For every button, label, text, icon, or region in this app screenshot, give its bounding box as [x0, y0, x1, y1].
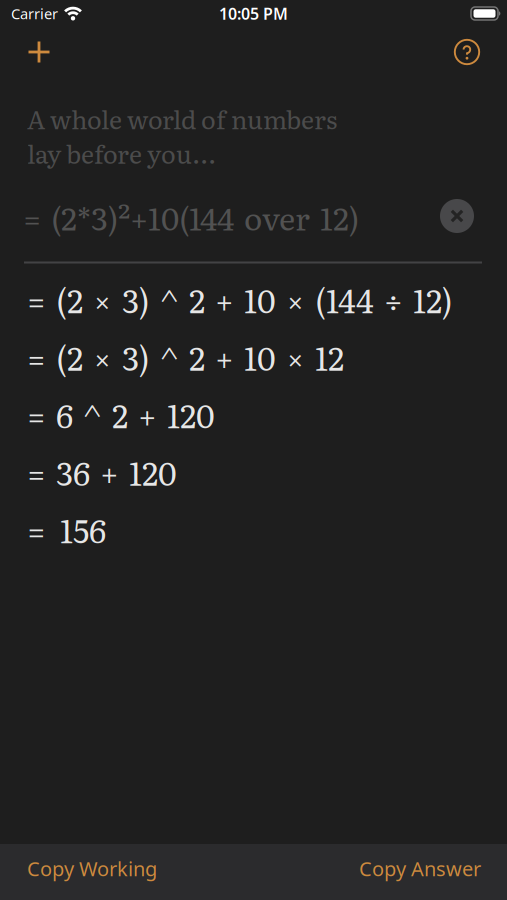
staticText: = 6 ^ 2 + 120	[27, 390, 215, 438]
staticText: Copy Working	[27, 855, 157, 882]
button[interactable]: Help	[445, 30, 489, 74]
staticText: lay before you...	[27, 134, 216, 171]
staticText: = (2 × 3) ^ 2 + 10 × (144 ÷ 12)	[27, 275, 453, 323]
staticText: = 156	[27, 505, 106, 553]
staticText: Carrier	[11, 4, 58, 23]
staticText: = 36 + 120	[27, 448, 177, 495]
button[interactable]: Copy Working	[27, 855, 157, 882]
button[interactable]: Copy Answer	[359, 855, 481, 882]
staticText: Copy Answer	[359, 855, 481, 882]
staticText: A whole world of numbers	[27, 100, 337, 137]
staticText: 10:05 PM	[219, 3, 288, 24]
button[interactable]: New calculation	[17, 30, 61, 74]
staticText: = (2*3)²+10(144 over 12)	[23, 194, 359, 240]
button[interactable]: Clear entry	[440, 199, 474, 233]
staticText: = (2 × 3) ^ 2 + 10 × 12	[27, 333, 344, 380]
